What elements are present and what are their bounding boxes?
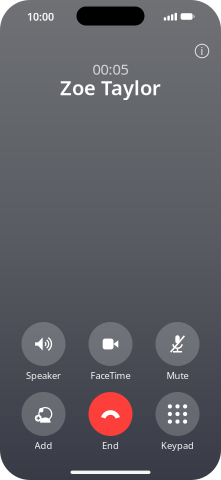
staticText: Mute [166,369,188,382]
staticText: Zoe Taylor [60,74,161,101]
staticText: Speaker [26,369,61,382]
staticText: Add [34,439,52,452]
button[interactable]: Add [10,386,77,456]
staticText: FaceTime [90,369,130,382]
staticText: Keypad [161,439,194,452]
button[interactable]: Mute [144,316,211,386]
staticText: 10:00 [27,9,54,24]
button[interactable]: FaceTime [77,316,144,386]
staticText: 00:05 [92,59,128,79]
button[interactable]: Speaker [10,316,77,386]
button[interactable]: Call details [189,38,215,64]
staticText: End [102,439,119,452]
button[interactable]: End [77,386,144,456]
button[interactable]: Keypad [144,386,211,456]
staticText: i [200,44,203,58]
